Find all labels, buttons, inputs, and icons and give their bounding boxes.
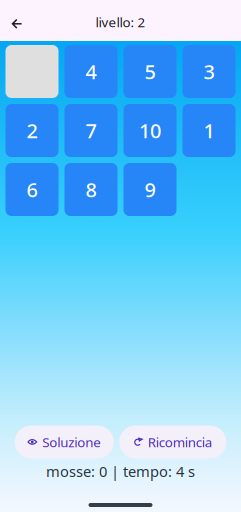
staticText: 3 <box>203 58 214 85</box>
staticText: 5 <box>144 58 155 85</box>
staticText: 2 <box>26 117 37 144</box>
button[interactable]: 7 <box>64 104 117 157</box>
staticText: 9 <box>144 176 155 203</box>
staticText: 7 <box>85 117 96 144</box>
staticText: 6 <box>26 176 37 203</box>
button[interactable]: 10 <box>123 104 176 157</box>
staticText: livello: 2 <box>95 13 145 31</box>
button[interactable]: 4 <box>64 45 117 98</box>
button[interactable]: Ricomincia <box>119 425 226 458</box>
staticText: mosse: 0 | tempo: 4 s <box>46 461 195 481</box>
button[interactable]: Back <box>0 5 34 35</box>
button[interactable]: 2 <box>5 104 58 157</box>
staticText: 10 <box>139 117 161 144</box>
button[interactable]: 3 <box>182 45 235 98</box>
staticText: Ricomincia <box>148 433 212 451</box>
button[interactable]: 6 <box>5 163 58 216</box>
button[interactable]: 1 <box>182 104 235 157</box>
button[interactable]: Soluzione <box>15 425 114 458</box>
button[interactable]: 9 <box>123 163 176 216</box>
staticText: 4 <box>85 58 96 85</box>
button[interactable]: 5 <box>123 45 176 98</box>
staticText: 1 <box>203 117 214 144</box>
staticText: Soluzione <box>42 433 101 451</box>
staticText: 8 <box>85 176 96 203</box>
button[interactable]: 8 <box>64 163 117 216</box>
